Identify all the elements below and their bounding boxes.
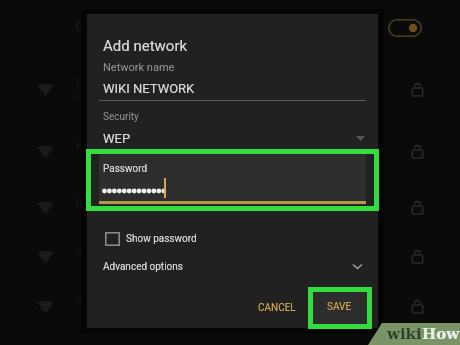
staticText: Advanced options	[103, 261, 183, 273]
staticText: On	[75, 20, 90, 34]
button[interactable]: Advanced options	[87, 255, 378, 283]
staticText: WEP	[103, 131, 131, 146]
staticText: Security	[103, 111, 139, 123]
staticText: SAVE	[327, 301, 352, 313]
staticText: wiki	[387, 325, 422, 343]
button[interactable]: SAVE	[311, 289, 367, 325]
staticText: st	[76, 294, 86, 307]
button[interactable]: Show password	[99, 228, 214, 253]
staticText: Password	[103, 163, 148, 175]
staticText: Network name	[103, 61, 175, 74]
staticText: Add network	[103, 37, 188, 55]
staticText: Show password	[126, 233, 197, 245]
staticText: HU	[76, 77, 91, 90]
staticText: How	[422, 325, 460, 343]
staticText: m	[76, 195, 86, 208]
staticText: st	[76, 244, 86, 257]
staticText: WIKI NETWORK	[103, 81, 195, 96]
staticText: H	[76, 139, 84, 152]
staticText: CANCEL	[258, 302, 296, 314]
button[interactable]: Wi-Fi toggle	[388, 19, 422, 37]
button[interactable]: CANCEL	[251, 293, 303, 323]
staticText: Co	[76, 91, 87, 102]
